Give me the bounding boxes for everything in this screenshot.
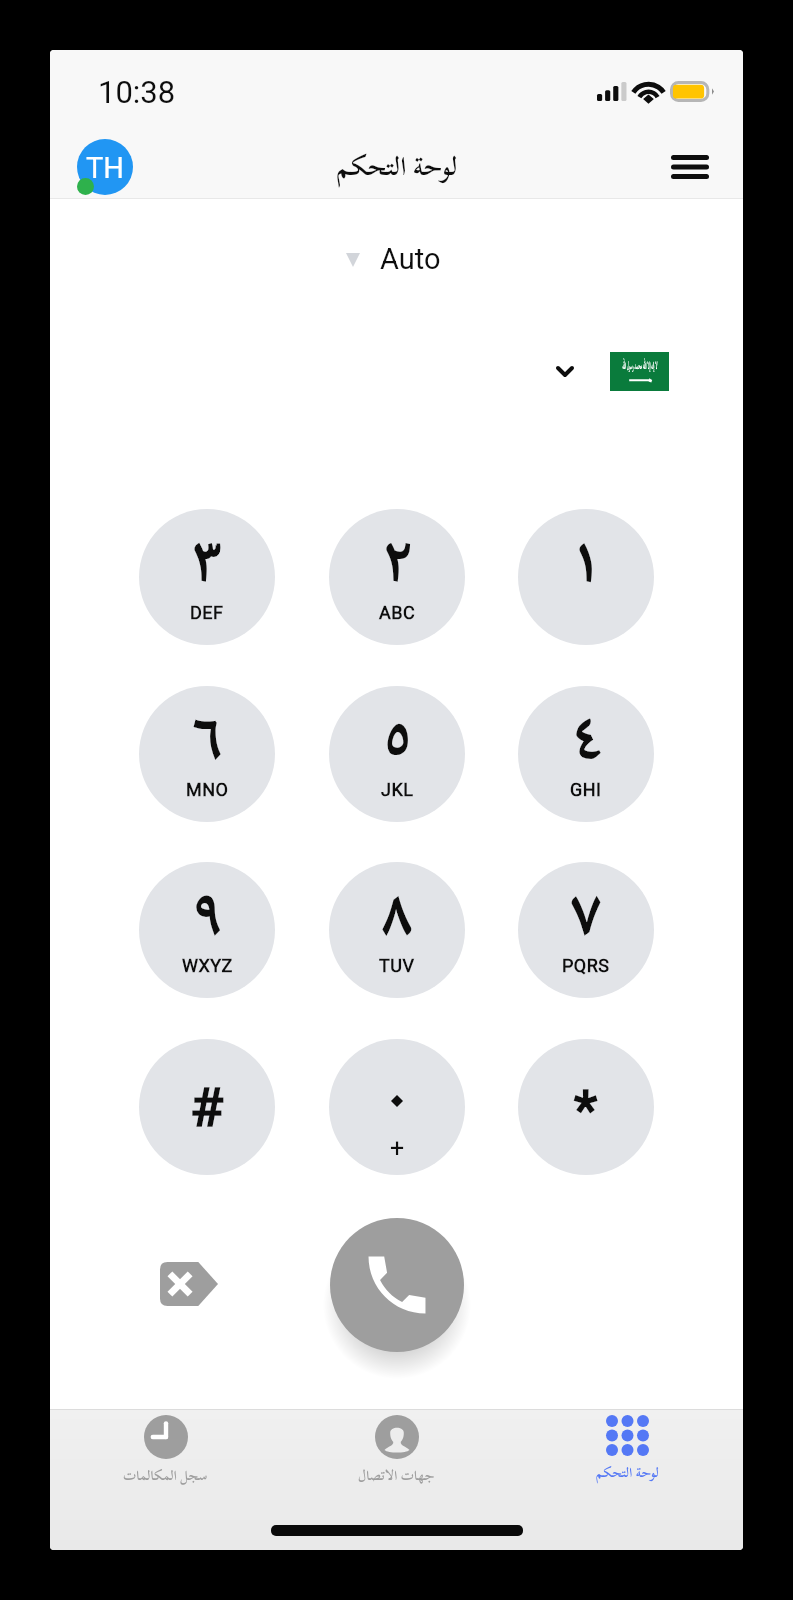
button[interactable]: + [329, 1039, 465, 1175]
staticText: لا إله إلا الله محمد رسول الله [622, 356, 657, 375]
button[interactable]: Call [330, 1218, 464, 1352]
staticText: جهات الاتصال [358, 1462, 435, 1490]
staticText: ٧ [572, 866, 601, 975]
staticText: لوحة التحكم [596, 1459, 660, 1487]
button[interactable]: ٤ [518, 686, 654, 822]
button[interactable]: ٦ [139, 686, 275, 822]
staticText: 10:38 [98, 74, 176, 110]
staticText: ١ [572, 513, 601, 622]
button[interactable]: Menu [663, 140, 717, 194]
button[interactable]: ٨ [329, 862, 465, 998]
staticText: ٨ [383, 866, 412, 975]
staticText: WXYZ [182, 955, 233, 976]
button[interactable]: Select country [546, 342, 679, 401]
staticText: DEF [190, 602, 224, 623]
staticText: TH [86, 151, 124, 185]
button[interactable]: Auto [338, 233, 449, 285]
button[interactable]: ٧ [518, 862, 654, 998]
button[interactable]: ١ [518, 509, 654, 645]
staticText: ٦ [193, 690, 222, 799]
staticText: PQRS [562, 955, 610, 976]
staticText: # [190, 1076, 224, 1139]
button[interactable]: ٩ [139, 862, 275, 998]
staticText: * [574, 1078, 598, 1141]
staticText: Auto [380, 242, 441, 276]
staticText: MNO [186, 779, 229, 800]
staticText: ٩ [193, 866, 222, 975]
staticText: GHI [570, 779, 602, 800]
staticText: + [390, 1134, 405, 1163]
staticText: سجل المكالمات [123, 1462, 208, 1490]
staticText: ٤ [572, 690, 601, 799]
button[interactable]: Profile [71, 136, 133, 198]
staticText: TUV [379, 955, 415, 976]
staticText: ABC [379, 602, 416, 623]
button[interactable]: * [518, 1039, 654, 1175]
staticText: ٥ [383, 690, 412, 799]
button[interactable]: ٣ [139, 509, 275, 645]
button[interactable]: سجل المكالمات [50, 1410, 281, 1490]
button[interactable]: ٢ [329, 509, 465, 645]
staticText: ٢ [383, 513, 412, 622]
staticText: لوحة التحكم [336, 140, 458, 193]
staticText: JKL [381, 779, 414, 800]
button[interactable]: ٥ [329, 686, 465, 822]
staticText: ٣ [193, 513, 222, 622]
button[interactable]: # [139, 1039, 275, 1175]
button[interactable]: جهات الاتصال [281, 1410, 512, 1490]
button[interactable]: لوحة التحكم [512, 1410, 743, 1487]
button[interactable]: Backspace [149, 1254, 229, 1314]
